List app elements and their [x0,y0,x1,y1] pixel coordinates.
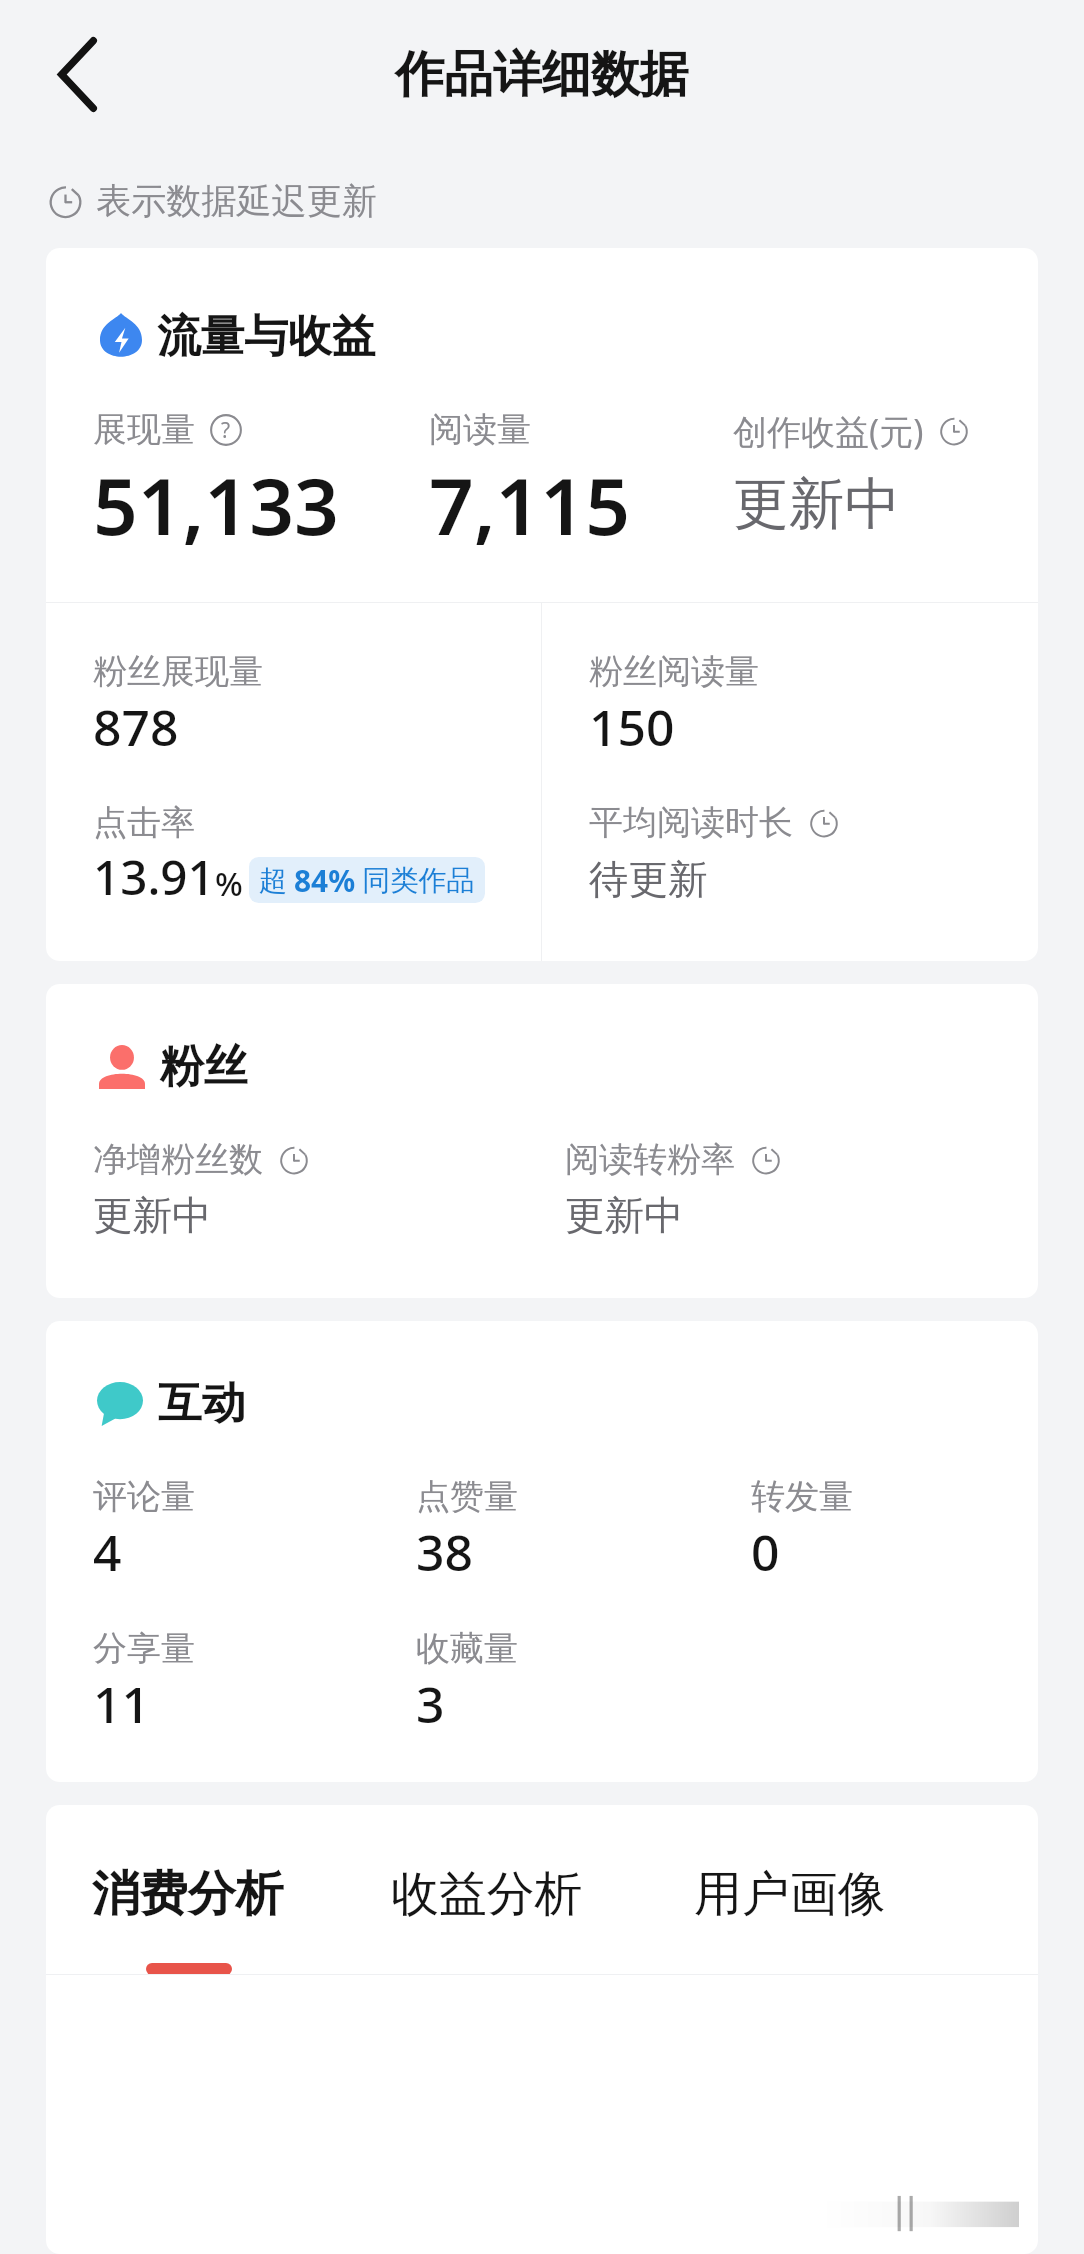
staticText: 消费分析 [92,1864,284,1924]
staticText: 更新中 [93,1191,212,1241]
staticText: 84% [294,860,356,901]
staticText: 超 [259,863,288,899]
staticText: 阅读转粉率 [565,1138,736,1181]
button[interactable]: 收益分析 [391,1864,694,1975]
staticText: 阅读量 [429,408,532,451]
staticText: 评论量 [93,1475,196,1518]
staticText: 展现量 [93,408,196,451]
staticText: 作品详细数据 [395,44,689,106]
button[interactable]: 阅读量 [429,408,733,558]
button[interactable]: 分享量 [93,1627,416,1738]
staticText: 互动 [158,1376,246,1431]
staticText: 创作收益(元) [733,408,924,454]
staticText: 38 [416,1518,473,1586]
button[interactable]: 点击率 [93,801,243,909]
staticText: 收益分析 [391,1864,583,1924]
staticText: 11 [93,1670,150,1738]
button[interactable]: 粉丝阅读量 [589,650,760,761]
staticText: 粉丝阅读量 [589,650,760,693]
button[interactable]: 创作收益(元) [733,408,1021,539]
staticText: 0 [751,1518,780,1586]
staticText: 转发量 [751,1475,854,1518]
staticText: 更新中 [733,469,901,539]
staticText: 粉丝 [160,1039,248,1094]
staticText: 用户画像 [694,1864,886,1924]
button[interactable]: 收藏量 [416,1627,1038,1738]
staticText: 13.91 [93,844,215,909]
button[interactable]: 消费分析 [92,1864,391,1975]
staticText: 流量与收益 [157,309,376,364]
staticText: 分享量 [93,1627,196,1670]
button[interactable]: 展现量 [93,408,429,558]
staticText: % [215,861,243,905]
staticText: 待更新 [589,855,708,905]
staticText: ? [221,416,231,445]
button[interactable]: What is 展现量? [210,414,242,446]
staticText: 150 [589,693,675,761]
button[interactable]: 净增粉丝数 [93,1138,565,1241]
staticText: 点击率 [93,801,196,844]
staticText: 4 [93,1518,122,1586]
staticText: 更新中 [565,1191,684,1241]
staticText: 7,115 [429,451,630,558]
staticText: 点赞量 [416,1475,519,1518]
button[interactable]: 粉丝展现量 [93,650,264,761]
staticText: 粉丝展现量 [93,650,264,693]
staticText: 净增粉丝数 [93,1138,264,1181]
button[interactable]: 点赞量 [416,1475,751,1586]
button[interactable]: 转发量 [751,1475,1038,1586]
staticText: 51,133 [93,451,339,558]
staticText: 3 [416,1670,445,1738]
staticText: 同类作品 [362,863,475,899]
staticText: 表示数据延迟更新 [96,179,377,223]
button[interactable]: 用户画像 [694,1864,997,1975]
staticText: 收藏量 [416,1627,519,1670]
button[interactable]: 阅读转粉率 [565,1138,1038,1241]
staticText: 平均阅读时长 [589,801,794,844]
staticText: 878 [93,693,179,761]
button[interactable]: 评论量 [93,1475,416,1586]
button[interactable]: Back [25,22,130,127]
button[interactable]: 平均阅读时长 [589,801,840,905]
